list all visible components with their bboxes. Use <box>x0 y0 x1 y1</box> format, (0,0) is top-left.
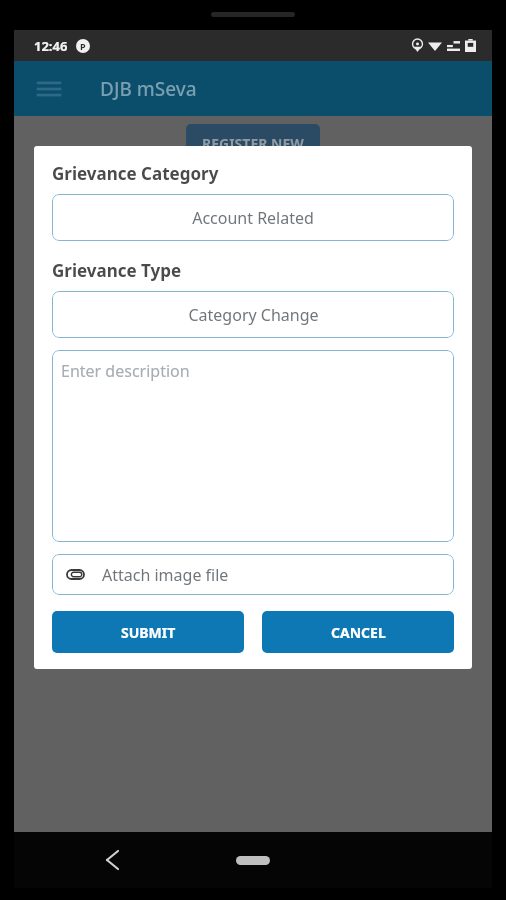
staticText: Grievance Category <box>52 162 219 185</box>
staticText: Enter description <box>61 360 190 382</box>
staticText: SUBMIT <box>121 623 176 642</box>
button[interactable]: Back <box>94 842 130 878</box>
staticText: REGISTER NEW <box>202 134 304 153</box>
button[interactable]: Enter description <box>52 350 454 542</box>
button[interactable]: SUBMIT <box>52 611 244 653</box>
staticText: DJB mSeva <box>100 76 197 102</box>
button[interactable]: Category Change <box>52 291 454 338</box>
button[interactable]: Home <box>236 856 270 865</box>
button[interactable]: Account Related <box>52 194 454 241</box>
button[interactable]: Open navigation menu <box>28 68 70 110</box>
button[interactable]: CANCEL <box>262 611 454 653</box>
staticText: 12:46 <box>34 37 68 55</box>
staticText: Attach image file <box>102 564 229 586</box>
staticText: Category Change <box>188 304 319 326</box>
staticText: P <box>80 40 86 52</box>
staticText: Grievance Type <box>52 259 182 282</box>
button[interactable]: Attach image file <box>52 554 454 595</box>
button[interactable]: REGISTER NEW <box>186 124 320 163</box>
staticText: Account Related <box>192 207 314 229</box>
staticText: CANCEL <box>331 623 386 642</box>
